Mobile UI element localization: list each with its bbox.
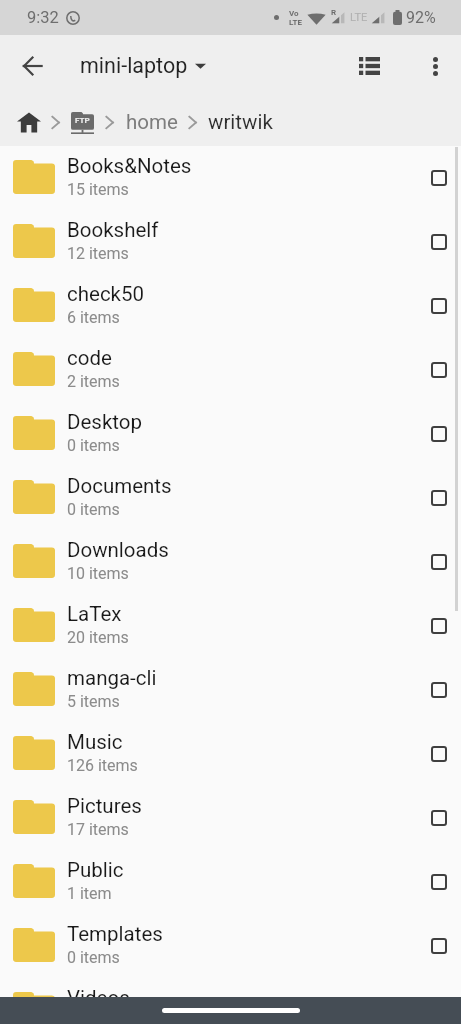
button[interactable]: code [0,338,461,402]
staticText: 20 items [67,628,129,647]
button[interactable]: home [126,110,178,134]
staticText: 10 items [67,564,129,583]
staticText: Music [67,730,123,754]
button[interactable]: Select Templates [417,921,461,971]
staticText: 15 items [67,180,129,199]
button[interactable]: Select manga-cli [417,665,461,715]
button[interactable]: Back [8,42,56,90]
staticText: Books&Notes [67,154,192,178]
button[interactable]: mini-laptop [80,53,206,78]
button[interactable]: Templates [0,914,461,978]
staticText: manga-cli [67,666,157,690]
staticText: Public [67,858,124,882]
button[interactable]: Select LaTex [417,601,461,651]
staticText: LaTex [67,602,122,626]
staticText: Templates [67,922,163,946]
staticText: 0 items [67,948,120,967]
staticText: LTE [350,11,368,24]
button[interactable]: writwik [208,110,273,134]
staticText: 126 items [67,756,138,775]
staticText: 0 items [67,436,120,455]
staticText: Pictures [67,794,142,818]
staticText: mini-laptop [80,53,188,78]
staticText: Vo [289,9,299,18]
staticText: 9:32 [27,8,59,27]
button[interactable]: Bookshelf [0,210,461,274]
button[interactable]: FTP server [71,102,94,142]
button[interactable]: Videos [0,978,461,997]
button[interactable]: Home [17,102,41,142]
button[interactable]: Documents [0,466,461,530]
staticText: 2 items [67,372,120,391]
button[interactable]: Select Bookshelf [417,217,461,267]
staticText: 12 items [67,244,129,263]
button[interactable]: Select check50 [417,281,461,331]
button[interactable]: Music [0,722,461,786]
button[interactable]: Desktop [0,402,461,466]
staticText: check50 [67,282,145,306]
button[interactable]: List view [345,42,393,90]
staticText: LTE [289,18,302,27]
button[interactable]: Select Music [417,729,461,779]
staticText: Downloads [67,538,169,562]
button[interactable]: Public [0,850,461,914]
button[interactable]: check50 [0,274,461,338]
staticText: 0 items [67,500,120,519]
button[interactable]: Select Pictures [417,793,461,843]
button[interactable]: Books&Notes [0,146,461,210]
button[interactable]: Downloads [0,530,461,594]
button[interactable]: Select Public [417,857,461,907]
staticText: Desktop [67,410,143,434]
button[interactable]: manga-cli [0,658,461,722]
staticText: Bookshelf [67,218,159,242]
button[interactable]: More options [411,42,459,90]
staticText: Documents [67,474,172,498]
staticText: code [67,346,112,370]
staticText: 17 items [67,820,129,839]
button[interactable]: Select Documents [417,473,461,523]
button[interactable]: Select code [417,345,461,395]
button[interactable]: Pictures [0,786,461,850]
staticText: 6 items [67,308,120,327]
button[interactable]: Select Desktop [417,409,461,459]
button[interactable]: Select Books&Notes [417,153,461,203]
staticText: FTP [75,116,90,125]
staticText: 92% [406,8,436,27]
staticText: Videos [67,986,130,997]
staticText: R [331,8,337,17]
staticText: 1 item [67,884,112,903]
button[interactable]: Select Downloads [417,537,461,587]
staticText: 5 items [67,692,120,711]
button[interactable]: LaTex [0,594,461,658]
